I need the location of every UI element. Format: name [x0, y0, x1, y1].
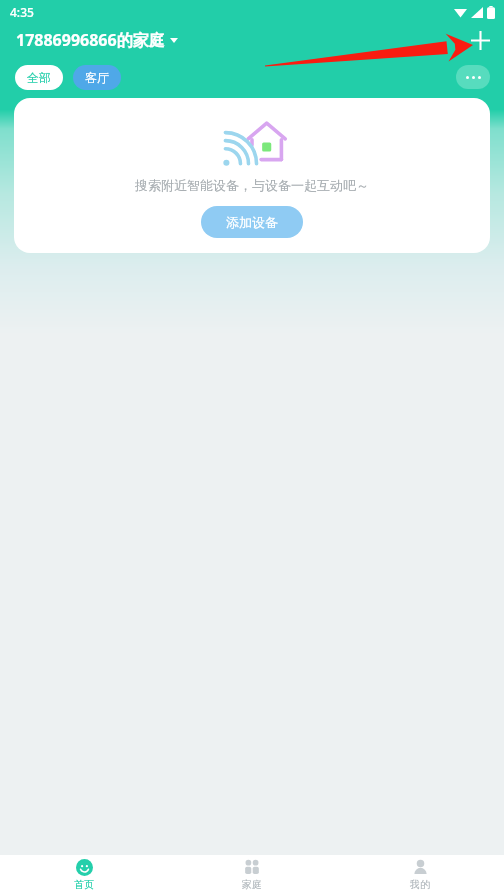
staticText: 4:35 [10, 4, 34, 20]
staticText: 家庭 [242, 878, 262, 891]
staticText: 添加设备 [226, 214, 278, 230]
staticText: 客厅 [85, 70, 109, 85]
button[interactable]: 全部 [15, 65, 63, 90]
button[interactable]: 17886996866的家庭 [14, 27, 180, 53]
staticText: 17886996866的家庭 [16, 29, 165, 51]
button[interactable]: 家庭 [168, 855, 336, 895]
staticText: 全部 [27, 70, 51, 85]
button[interactable]: 添加 [462, 24, 498, 56]
button[interactable]: 客厅 [73, 65, 121, 90]
staticText: 搜索附近智能设备，与设备一起互动吧～ [135, 177, 369, 193]
button[interactable]: 更多 [456, 65, 490, 89]
staticText: 首页 [74, 878, 94, 891]
button[interactable]: 我的 [336, 855, 504, 895]
button[interactable]: 首页 [0, 855, 168, 895]
staticText: 我的 [410, 878, 430, 891]
button[interactable]: 添加设备 [201, 206, 303, 238]
